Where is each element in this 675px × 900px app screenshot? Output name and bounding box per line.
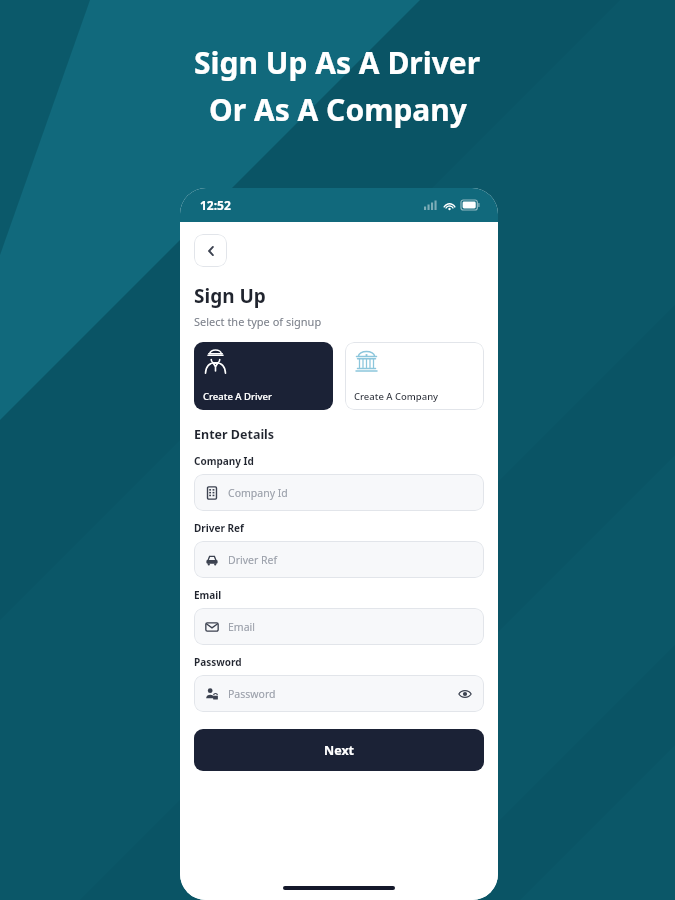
button[interactable]: Driver Ref bbox=[194, 541, 484, 578]
button[interactable]: Back bbox=[194, 234, 227, 267]
staticText: Password bbox=[228, 687, 276, 701]
button[interactable]: Email bbox=[194, 608, 484, 645]
staticText: Password bbox=[194, 655, 242, 669]
staticText: Or As A Company bbox=[209, 89, 467, 130]
staticText: Next bbox=[324, 742, 355, 759]
button[interactable]: Create A Company bbox=[345, 342, 484, 410]
staticText: Company Id bbox=[194, 454, 254, 468]
staticText: Enter Details bbox=[194, 426, 275, 443]
staticText: Select the type of signup bbox=[194, 314, 322, 329]
staticText: Company Id bbox=[228, 486, 288, 500]
staticText: Email bbox=[194, 588, 222, 602]
button[interactable]: Password bbox=[194, 675, 484, 712]
staticText: Sign Up bbox=[194, 283, 266, 309]
staticText: Create A Company bbox=[354, 390, 439, 403]
staticText: Create A Driver bbox=[203, 390, 273, 403]
button[interactable]: Company Id bbox=[194, 474, 484, 511]
staticText: 12:52 bbox=[200, 197, 231, 213]
button[interactable]: Show password bbox=[457, 686, 473, 702]
button[interactable]: Create A Driver bbox=[194, 342, 333, 410]
staticText: Driver Ref bbox=[228, 553, 278, 567]
staticText: Driver Ref bbox=[194, 521, 244, 535]
button[interactable]: Next bbox=[194, 729, 484, 771]
staticText: Email bbox=[228, 620, 255, 634]
staticText: Sign Up As A Driver bbox=[194, 42, 481, 83]
